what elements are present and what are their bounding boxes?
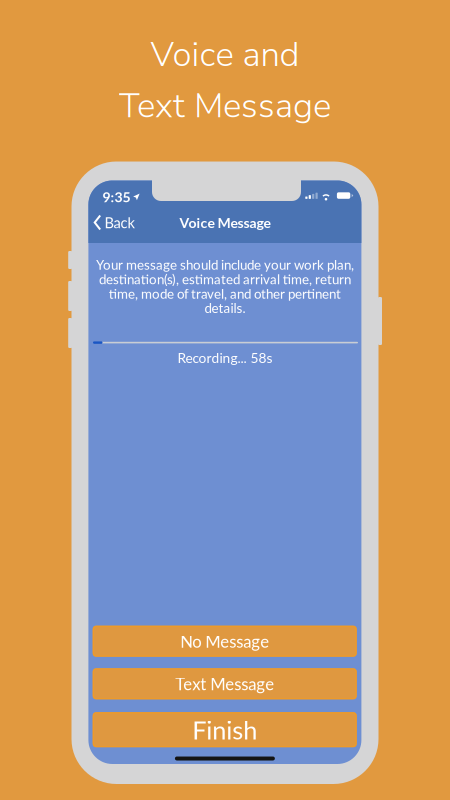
staticText: Voice Message — [179, 214, 270, 231]
staticText: details. — [204, 300, 245, 316]
button[interactable]: Finish — [93, 712, 357, 747]
staticText: Text Message — [119, 82, 331, 130]
button[interactable]: Text Message — [93, 668, 357, 699]
staticText: Text Message — [175, 674, 274, 694]
staticText: 9:35 — [102, 188, 130, 205]
staticText: Finish — [192, 714, 257, 745]
staticText: Back — [104, 214, 134, 231]
staticText: Voice and — [150, 31, 299, 78]
staticText: Recording... 58s — [177, 349, 272, 366]
staticText: No Message — [180, 631, 269, 651]
button[interactable]: Back — [88, 209, 144, 235]
staticText: destination(s), estimated arrival time, … — [99, 271, 351, 287]
staticText: time, mode of travel, and other pertinen… — [109, 285, 341, 301]
staticText: Your message should include your work pl… — [96, 257, 354, 273]
button[interactable]: No Message — [93, 626, 357, 657]
